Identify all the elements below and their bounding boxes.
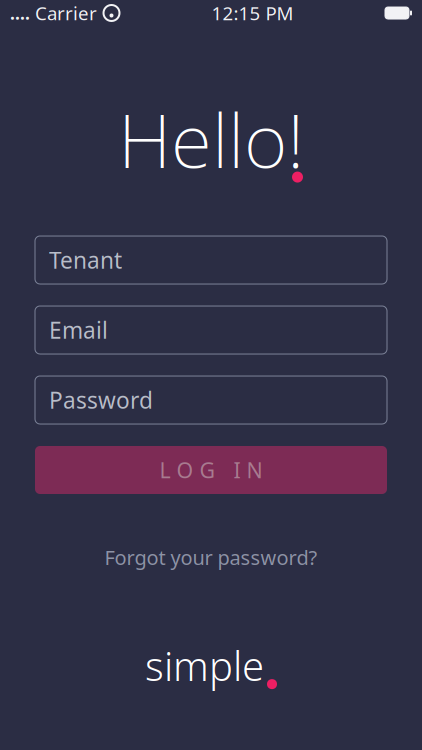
staticText: Email [49, 315, 108, 345]
staticText: simple [145, 639, 264, 692]
staticText: L O G I N [159, 456, 262, 484]
button[interactable]: Forgot your password? [90, 538, 331, 577]
staticText: 12:15 PM [211, 1, 293, 25]
staticText: .... [10, 1, 30, 24]
staticText: Carrier [35, 1, 97, 25]
staticText: Tenant [49, 245, 122, 275]
button[interactable]: L O G I N [35, 446, 387, 494]
staticText: Password [49, 385, 153, 415]
staticText: Hello! [118, 89, 304, 189]
staticText: Forgot your password? [104, 544, 317, 571]
